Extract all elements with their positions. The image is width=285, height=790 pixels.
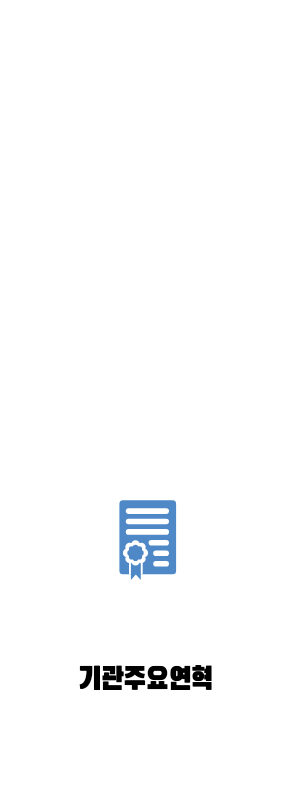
button[interactable]: 기관주요연혁 (78, 665, 213, 697)
staticText: 기관주요연혁 (79, 665, 214, 697)
staticText: 기관주요연혁 (78, 665, 213, 697)
